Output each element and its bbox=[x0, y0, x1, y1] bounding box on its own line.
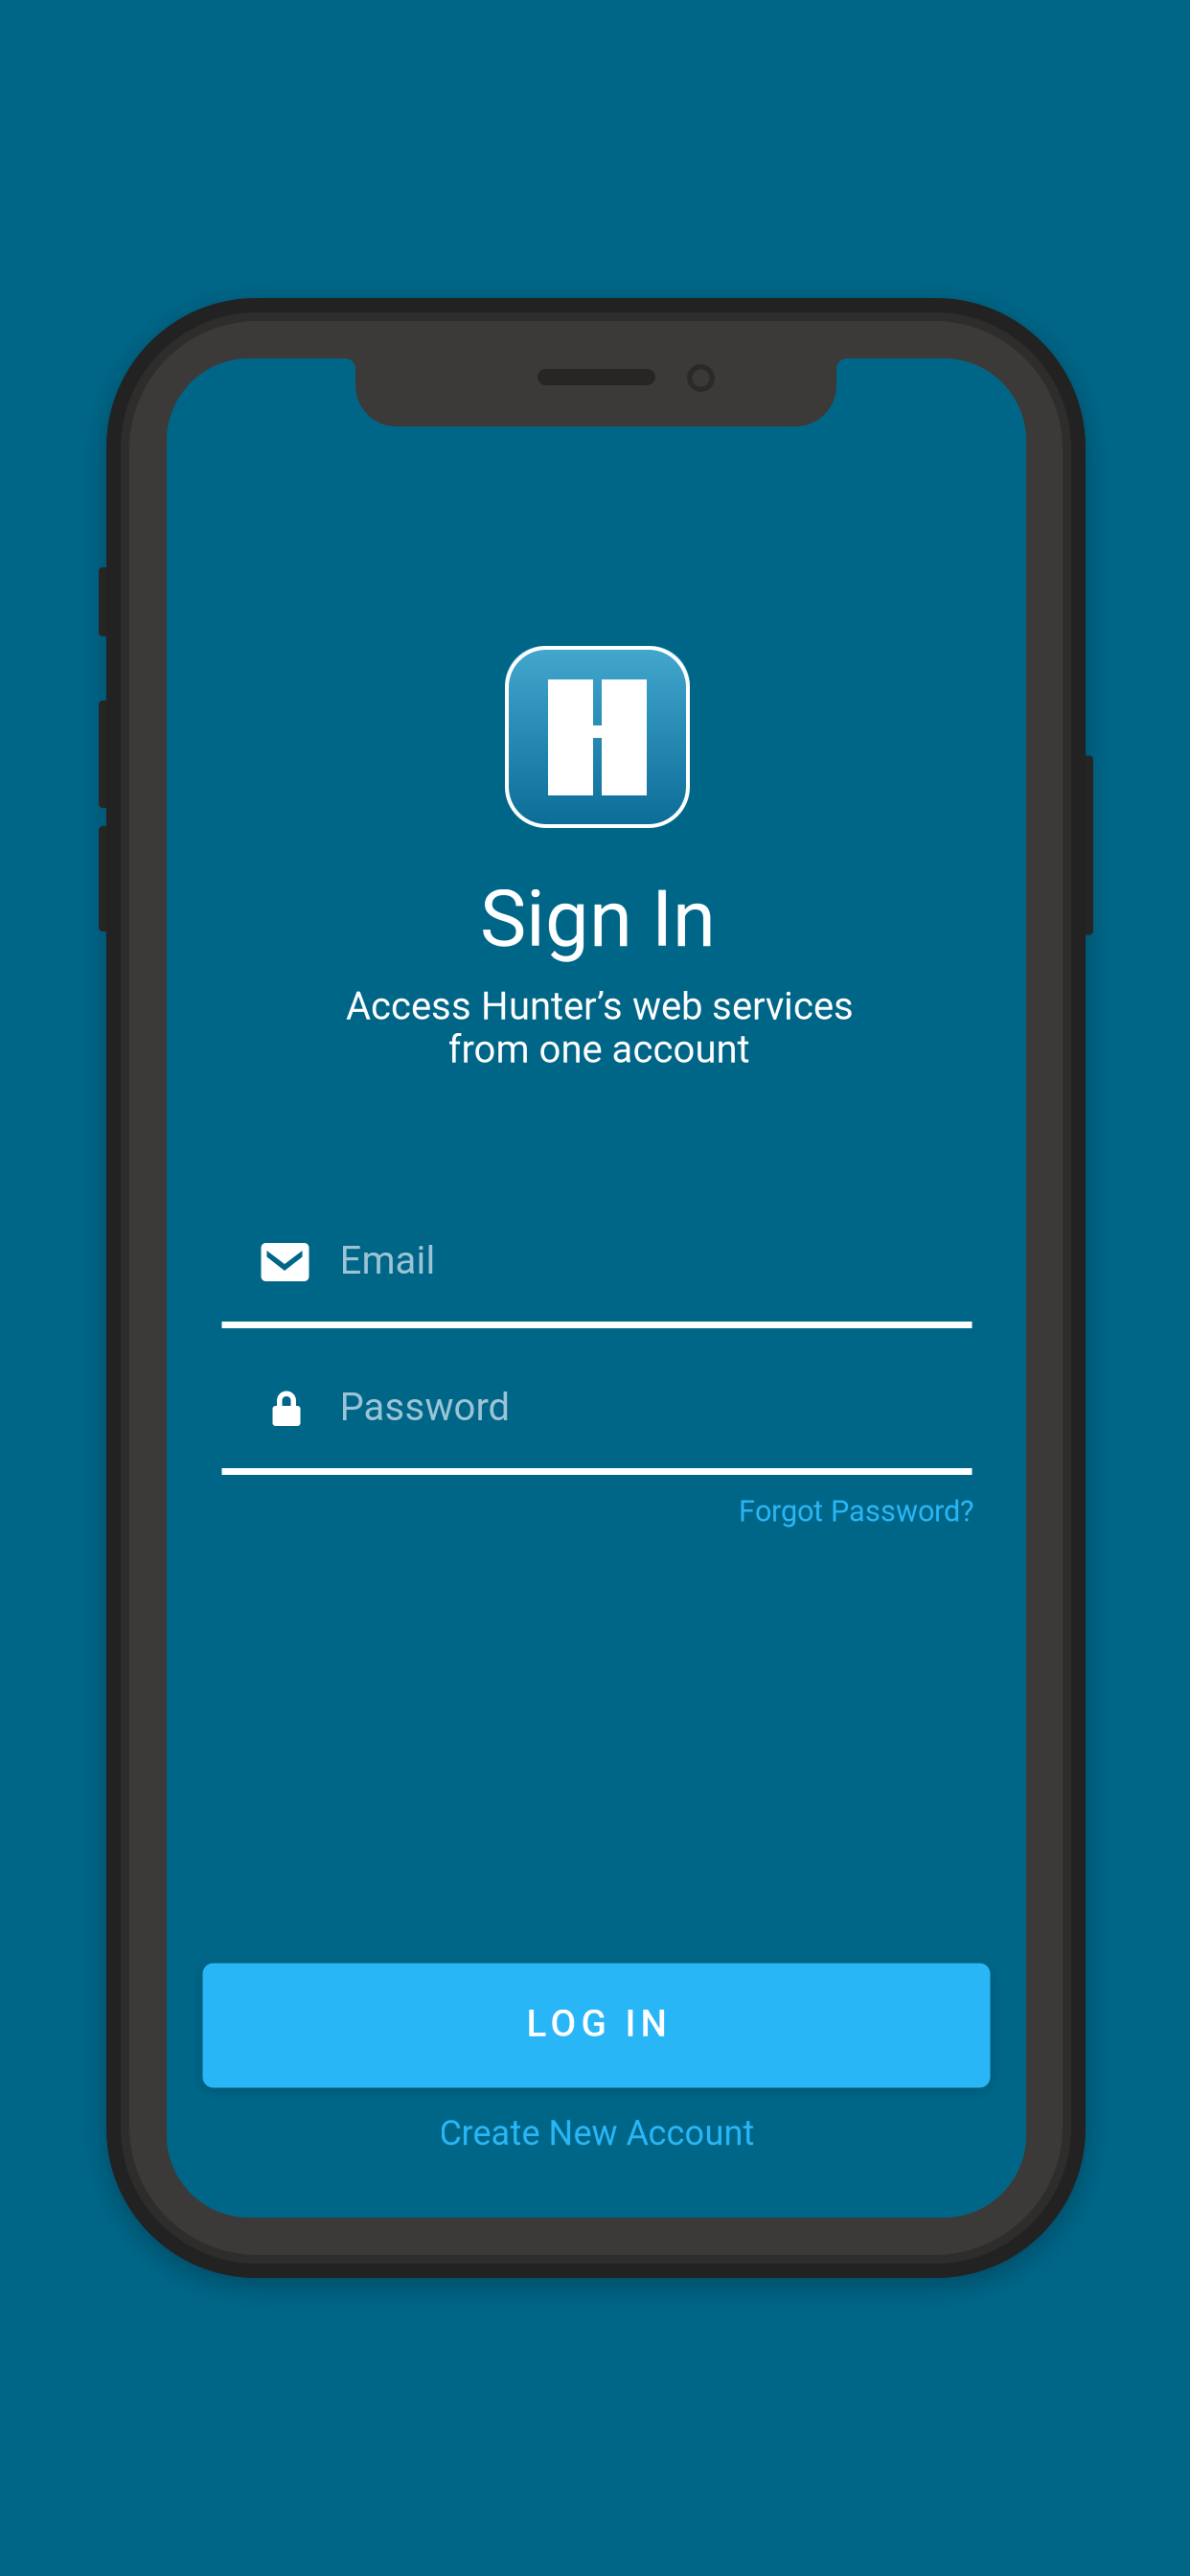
button[interactable]: Password bbox=[222, 1387, 972, 1477]
staticText: Access Hunter’s web services bbox=[346, 984, 854, 1029]
staticText: LOG IN bbox=[526, 2002, 666, 2045]
staticText: Password bbox=[340, 1385, 510, 1430]
button[interactable]: LOG IN bbox=[203, 1963, 990, 2088]
staticText: Create New Account bbox=[439, 2113, 755, 2153]
staticText: from one account bbox=[448, 1027, 750, 1072]
button[interactable]: Forgot Password? bbox=[686, 1484, 973, 1538]
button[interactable]: Email bbox=[222, 1240, 972, 1330]
staticText: Forgot Password? bbox=[739, 1494, 973, 1528]
staticText: Sign In bbox=[480, 873, 716, 965]
staticText: Email bbox=[340, 1238, 435, 1283]
button[interactable]: Create New Account bbox=[396, 2104, 798, 2162]
